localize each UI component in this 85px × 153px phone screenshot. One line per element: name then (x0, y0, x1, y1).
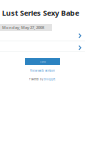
staticText: Lust Series Sexy Babe (2, 8, 79, 18)
staticText: Home (39, 60, 45, 63)
button[interactable]: Blogger (44, 78, 55, 81)
button[interactable]: Home (25, 58, 60, 65)
staticText: Powered by (29, 78, 44, 81)
staticText: View web version (30, 68, 55, 72)
button[interactable]: Open post (0, 43, 85, 52)
button[interactable]: Open post (0, 31, 85, 40)
staticText: Blogger (44, 78, 55, 81)
staticText: . (55, 78, 56, 81)
button[interactable]: View web version (30, 68, 55, 72)
staticText: Monday, May 27, 2008 (2, 25, 44, 30)
